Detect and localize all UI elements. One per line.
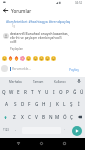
button[interactable]: Ş xyxy=(68,98,75,110)
button[interactable]: S xyxy=(11,98,19,110)
staticText: , xyxy=(15,127,16,131)
button[interactable]: H xyxy=(40,98,47,110)
button[interactable]: Y xyxy=(36,86,43,98)
button[interactable]: Emoji reaction xyxy=(32,55,38,61)
staticText: #keşfetetiket #hashtagya #trendpaylaş xyxy=(6,19,71,24)
button[interactable]: Voice input xyxy=(75,77,83,85)
button[interactable]: Send xyxy=(72,126,82,136)
button[interactable]: Paylaş xyxy=(69,68,79,72)
button[interactable]: Merhaba xyxy=(9,80,22,84)
staticText: F xyxy=(28,101,31,107)
button[interactable]: Emoji reaction xyxy=(25,55,31,61)
button[interactable]: Ç xyxy=(68,111,75,123)
staticText: G xyxy=(35,101,39,107)
button[interactable]: Q xyxy=(0,86,8,98)
button[interactable]: Back xyxy=(13,138,23,148)
staticText: N xyxy=(49,114,53,120)
staticText: Paylaş xyxy=(69,68,79,72)
staticText: . xyxy=(64,127,65,131)
staticText: B xyxy=(42,114,46,120)
button[interactable]: Emoji reaction xyxy=(50,55,56,61)
button[interactable]: W xyxy=(8,86,15,98)
button[interactable]: Emoji reaction xyxy=(44,55,50,61)
staticText: Paylaşılan xyxy=(10,47,24,51)
staticText: J xyxy=(50,101,52,107)
button[interactable]: Backspace xyxy=(75,111,85,123)
button[interactable]: T xyxy=(29,86,36,98)
staticText: U xyxy=(45,89,49,95)
button[interactable]: F xyxy=(26,98,33,110)
button[interactable]: Shift xyxy=(0,111,10,123)
staticText: Merhaba xyxy=(9,80,22,84)
button[interactable]: ?123 xyxy=(3,128,9,132)
staticText: X xyxy=(21,114,24,120)
button[interactable]: Home xyxy=(36,138,46,148)
button[interactable]: R xyxy=(22,86,29,98)
button[interactable]: G xyxy=(33,98,40,110)
staticText: M xyxy=(55,114,60,120)
button[interactable]: E xyxy=(15,86,22,98)
staticText: Q xyxy=(2,89,6,95)
staticText: C xyxy=(28,114,31,120)
button[interactable]: X xyxy=(18,111,26,123)
staticText: P xyxy=(66,89,69,95)
button[interactable]: I xyxy=(50,86,57,98)
staticText: R xyxy=(24,89,27,95)
staticText: Ğ xyxy=(73,89,77,95)
staticText: T xyxy=(31,89,34,95)
button[interactable]: P xyxy=(64,86,71,98)
staticText: L xyxy=(63,101,66,107)
button[interactable]: Tamam xyxy=(33,80,44,84)
staticText: Kullanıcı xyxy=(54,80,66,84)
button[interactable]: A xyxy=(3,98,11,110)
staticText: Ü xyxy=(80,89,84,95)
button[interactable]: N xyxy=(47,111,54,123)
staticText: 1g xyxy=(12,24,16,28)
staticText: V xyxy=(35,114,38,120)
staticText: 04:52 xyxy=(75,1,83,5)
button[interactable]: Emoji reaction xyxy=(13,55,19,61)
staticText: Ç xyxy=(70,114,73,120)
button[interactable]: M xyxy=(54,111,61,123)
button[interactable]: Back xyxy=(1,6,10,15)
staticText: E xyxy=(17,89,20,95)
button[interactable]: Ö xyxy=(61,111,68,123)
button[interactable]: İ xyxy=(75,98,82,110)
staticText: O xyxy=(59,89,63,95)
button[interactable]: K xyxy=(54,98,61,110)
button[interactable]: Kullanıcı xyxy=(54,80,66,84)
button[interactable]: Recents xyxy=(59,138,69,148)
button[interactable]: J xyxy=(47,98,54,110)
button[interactable]: B xyxy=(40,111,47,123)
staticText: A xyxy=(5,101,9,107)
staticText: W xyxy=(9,89,14,95)
staticText: İ xyxy=(78,101,80,107)
staticText: ?123 xyxy=(3,128,9,132)
button[interactable]: U xyxy=(43,86,50,98)
button[interactable]: O xyxy=(57,86,64,98)
staticText: Yorumlar xyxy=(11,8,32,14)
button[interactable]: C xyxy=(26,111,33,123)
button[interactable]: Emoji reaction xyxy=(38,55,44,61)
staticText: D xyxy=(21,101,25,107)
button[interactable]: Emoji reaction xyxy=(7,55,13,61)
button[interactable]: Ü xyxy=(78,86,85,98)
staticText: coM xyxy=(10,40,17,44)
button[interactable]: Ğ xyxy=(71,86,78,98)
button[interactable]: D xyxy=(19,98,26,110)
staticText: H xyxy=(42,101,46,107)
button[interactable]: . xyxy=(64,127,65,131)
button[interactable]: Emoji reaction xyxy=(1,55,7,61)
button[interactable]: L xyxy=(61,98,68,110)
staticText: K xyxy=(56,101,59,107)
staticText: elkriht ve paylaşm ekenbinyahoolS xyxy=(10,36,62,40)
button[interactable]: Z xyxy=(10,111,18,123)
button[interactable]: V xyxy=(33,111,40,123)
staticText: Ş xyxy=(70,101,73,107)
button[interactable]: , xyxy=(15,127,16,131)
button[interactable]: Emoji reaction xyxy=(19,55,25,61)
button[interactable]: #keşfetetiket #hashtagya #trendpaylaş xyxy=(6,19,71,24)
button[interactable]: Profile photo xyxy=(3,33,9,39)
staticText: Ö xyxy=(63,114,67,120)
